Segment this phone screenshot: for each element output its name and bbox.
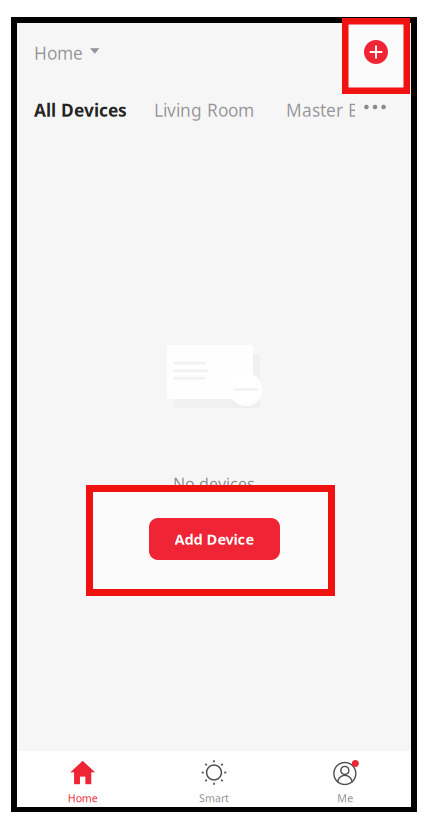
button[interactable]: Me <box>280 751 411 807</box>
button[interactable]: Home <box>17 751 148 807</box>
button[interactable]: Master Be <box>276 93 379 127</box>
staticText: Home <box>68 791 98 805</box>
staticText: Smart <box>199 791 229 805</box>
button[interactable]: All Devices <box>24 93 137 127</box>
staticText: Home <box>34 41 83 64</box>
staticText: No devices <box>173 473 255 494</box>
staticText: All Devices <box>34 98 127 121</box>
staticText: Add Device <box>174 529 254 549</box>
button[interactable]: Living Room <box>144 93 264 127</box>
button[interactable]: Add Device <box>149 518 280 560</box>
staticText: Master Be <box>286 98 369 121</box>
button[interactable]: Smart <box>148 751 280 807</box>
button[interactable]: Home <box>17 33 113 73</box>
staticText: Living Room <box>154 98 254 121</box>
button[interactable]: Add device <box>353 29 399 75</box>
button[interactable]: More rooms <box>353 90 397 124</box>
staticText: Me <box>337 791 353 805</box>
